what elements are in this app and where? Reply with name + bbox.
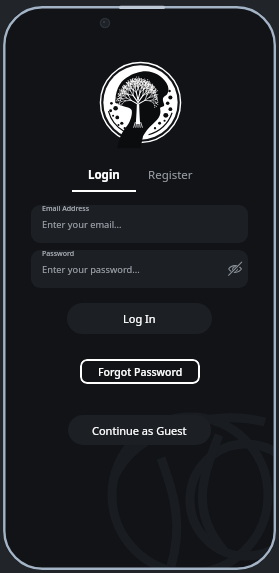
button[interactable]: Password — [31, 250, 248, 288]
staticText: Log In — [123, 311, 156, 326]
staticText: Register — [148, 167, 193, 183]
button[interactable]: Log In — [67, 303, 212, 334]
button[interactable]: Show password — [225, 259, 245, 279]
staticText: Email Address — [42, 205, 90, 214]
button[interactable]: Login — [72, 162, 136, 192]
staticText: Enter your email... — [42, 218, 122, 231]
staticText: Password — [42, 250, 75, 259]
staticText: Continue as Guest — [92, 423, 187, 438]
button[interactable]: Continue as Guest — [68, 415, 211, 445]
button[interactable]: Forgot Password — [80, 359, 200, 384]
staticText: Login — [88, 167, 120, 183]
staticText: Forgot Password — [98, 365, 183, 379]
staticText: Enter your password... — [42, 263, 140, 276]
button[interactable]: Register — [138, 162, 202, 186]
button[interactable]: Email Address — [31, 205, 248, 243]
